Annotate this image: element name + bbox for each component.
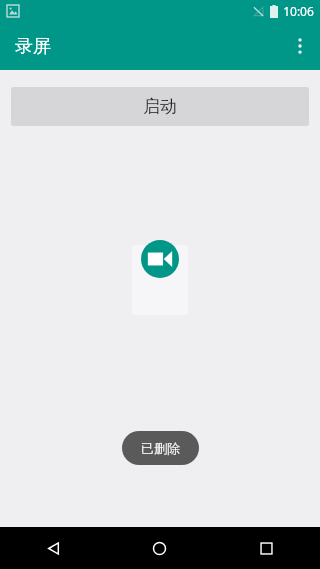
staticText: 录屏 — [15, 35, 51, 58]
button[interactable]: Recent apps — [213, 527, 320, 569]
button[interactable]: More options — [280, 26, 320, 66]
staticText: 已删除 — [141, 440, 180, 456]
staticText: 10:06 — [283, 3, 314, 19]
button[interactable]: Back — [0, 527, 106, 569]
staticText: 启动 — [143, 96, 177, 117]
button[interactable]: Record video — [141, 240, 179, 278]
button[interactable]: Home — [106, 527, 213, 569]
button[interactable]: 启动 — [11, 87, 309, 126]
